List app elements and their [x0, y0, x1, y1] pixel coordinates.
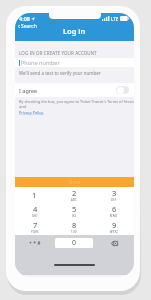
button[interactable]: 4 [15, 203, 54, 219]
staticText: DEF [111, 198, 117, 202]
staticText: GHI [32, 214, 38, 218]
staticText: PQRS [31, 230, 39, 234]
staticText: 7 [33, 220, 38, 230]
staticText: 2 [72, 188, 77, 198]
staticText: 6 [112, 204, 117, 214]
staticText: We'll send a text to verify your number [19, 70, 101, 76]
button[interactable]: 2 [54, 187, 94, 203]
button[interactable]: 1 [15, 187, 54, 203]
staticText: 3 [112, 188, 117, 198]
staticText: 1 [32, 190, 37, 200]
staticText: 9 [112, 220, 117, 230]
staticText: + * # [29, 240, 41, 247]
staticText: 8 [72, 220, 77, 230]
button[interactable]: Backspace [94, 235, 134, 251]
button[interactable]: 3 [94, 187, 134, 203]
button[interactable]: 6 [94, 203, 134, 219]
staticText: 4 [33, 204, 38, 214]
staticText: 0 [72, 238, 77, 248]
button[interactable]: Phone number [15, 58, 134, 67]
staticText: WXYZ [110, 230, 119, 234]
button[interactable]: 8 [54, 219, 94, 235]
button[interactable]: Search [17, 23, 37, 30]
staticText: 5 [72, 204, 77, 214]
staticText: TUV [71, 230, 77, 234]
button[interactable]: 9 [94, 219, 134, 235]
staticText: LOG IN OR CREATE YOUR ACCOUNT [19, 50, 97, 56]
button[interactable]: 7 [15, 219, 54, 235]
staticText: Done [69, 179, 81, 185]
button[interactable]: Privacy Policy. [19, 110, 44, 115]
staticText: JKL [72, 214, 77, 218]
staticText: Log in [63, 26, 86, 36]
staticText: ABC [71, 198, 77, 202]
button[interactable]: 0 [55, 238, 93, 248]
button[interactable]: 5 [54, 203, 94, 219]
staticText: Phone number [21, 59, 60, 66]
staticText: By checking the box, you agree to Ticket… [19, 99, 134, 109]
staticText: LTE [111, 16, 119, 22]
button[interactable]: I agree [15, 83, 134, 97]
staticText: Search [21, 23, 37, 30]
staticText: I agree [19, 87, 38, 94]
button[interactable]: + * # [15, 235, 54, 251]
staticText: 4:08 [19, 15, 30, 22]
staticText: MNO [110, 214, 118, 218]
